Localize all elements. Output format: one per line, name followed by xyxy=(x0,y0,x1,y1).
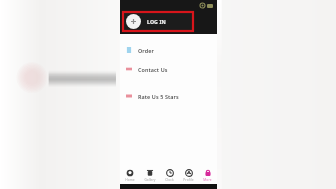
staticText: Profile xyxy=(183,178,194,182)
staticText: LOG IN xyxy=(147,18,166,25)
button[interactable]: Clock xyxy=(160,167,179,184)
staticText: Rate Us 5 Stars xyxy=(138,93,179,100)
button[interactable]: Gallery xyxy=(140,167,160,184)
staticText: Home xyxy=(125,178,135,182)
staticText: Gallery xyxy=(144,178,156,182)
button[interactable]: Profile xyxy=(179,167,198,184)
staticText: Order xyxy=(138,47,154,54)
button[interactable]: More xyxy=(198,167,217,184)
button[interactable]: Home xyxy=(120,167,140,184)
button[interactable]: Rate Us 5 Stars xyxy=(120,90,217,102)
staticText: Contact Us xyxy=(138,66,168,73)
button[interactable]: Order xyxy=(120,44,217,56)
button[interactable]: LOG IN xyxy=(123,12,193,31)
staticText: More xyxy=(203,178,212,182)
button[interactable]: Contact Us xyxy=(120,63,217,75)
staticText: Clock xyxy=(165,178,174,182)
